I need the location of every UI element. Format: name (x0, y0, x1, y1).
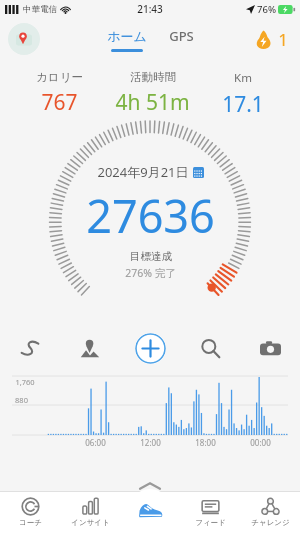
staticText: コーチ (19, 518, 42, 527)
staticText: 1 (278, 28, 288, 51)
staticText: チャレンジ (251, 518, 290, 527)
button[interactable]: Camera (240, 324, 300, 372)
button[interactable]: Profile map (8, 23, 40, 55)
button[interactable]: フィード (180, 491, 240, 533)
button[interactable]: Trail (60, 324, 120, 372)
button[interactable]: ホーム (107, 28, 147, 52)
staticText: 12:00 (123, 437, 178, 448)
staticText: ホーム (107, 28, 147, 44)
staticText: インサイト (71, 518, 110, 527)
staticText: 目標達成 (130, 250, 172, 263)
staticText: 活動時間 (130, 70, 176, 84)
staticText: 00:00 (233, 437, 288, 448)
staticText: 27636 (86, 185, 215, 246)
button[interactable]: 1 (254, 28, 288, 51)
staticText: 4h 51m (115, 88, 190, 117)
button[interactable]: Km (218, 70, 268, 119)
button[interactable]: 活動時間 (111, 70, 194, 117)
staticText: 276% 完了 (125, 266, 176, 280)
button[interactable]: Activity (129, 489, 171, 531)
button[interactable]: 2024年9月21日 (45, 119, 255, 324)
staticText: 2024年9月21日 (97, 163, 189, 181)
staticText: 中華電信 (23, 4, 57, 15)
staticText: 18:00 (178, 437, 233, 448)
button[interactable]: カロリー (32, 70, 87, 117)
button[interactable]: Route (0, 324, 60, 372)
staticText: 76% (257, 3, 276, 16)
button[interactable]: コーチ (0, 491, 60, 533)
staticText: 17.1 (222, 90, 264, 119)
button[interactable]: Add (120, 324, 180, 372)
staticText: 1,760 (15, 377, 35, 387)
button[interactable]: チャレンジ (240, 491, 300, 533)
staticText: GPS (169, 27, 194, 45)
staticText: カロリー (36, 70, 83, 84)
staticText: Km (234, 70, 252, 86)
staticText: 21:43 (137, 2, 163, 16)
staticText: 767 (41, 88, 78, 117)
button[interactable]: 1,760 (12, 374, 288, 436)
staticText: フィード (195, 518, 226, 527)
button[interactable]: GPS (169, 27, 194, 52)
button[interactable]: インサイト (60, 491, 120, 533)
staticText: 880 (15, 395, 28, 405)
staticText: 06:00 (68, 437, 123, 448)
button[interactable]: Search (180, 324, 240, 372)
